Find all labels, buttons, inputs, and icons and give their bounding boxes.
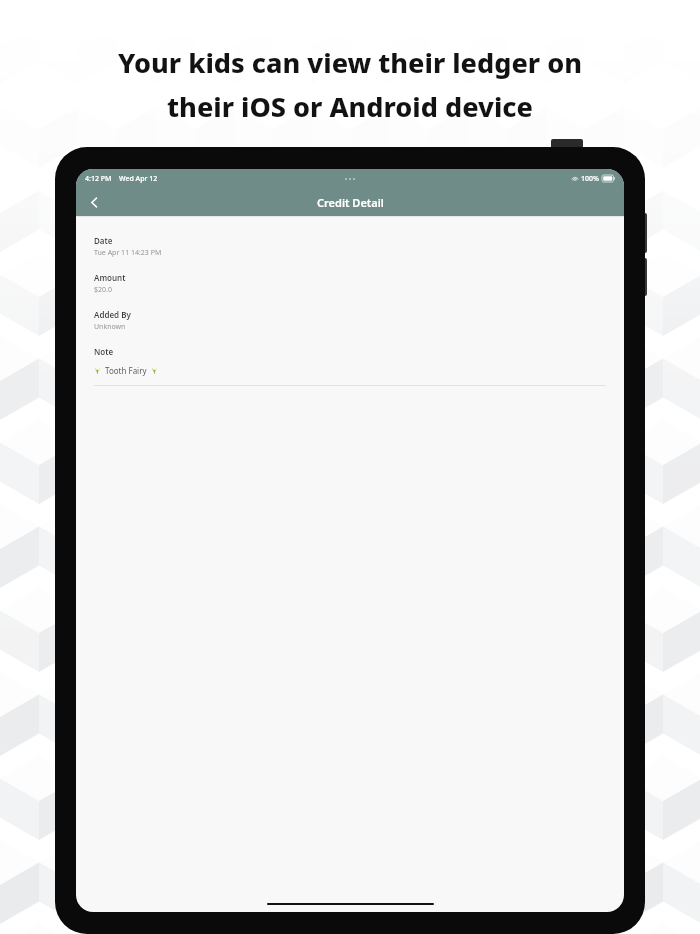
staticText: Your kids can view their ledger on [118,44,582,81]
staticText: 100% [581,174,599,184]
staticText: 4:12 PM [85,174,112,184]
staticText: Amount [94,272,126,283]
staticText: their iOS or Android device [167,88,533,125]
staticText: Credit Detail [317,195,384,210]
staticText: Wed Apr 12 [119,174,158,184]
staticText: Tooth Fairy [105,365,147,376]
staticText: Date [94,235,113,246]
staticText: Note [94,346,114,357]
staticText: $20.0 [94,285,112,295]
staticText: Unknown [94,322,126,332]
button[interactable]: Back [80,188,108,216]
staticText: Added By [94,309,131,320]
staticText: Tue Apr 11 14:23 PM [94,248,162,258]
